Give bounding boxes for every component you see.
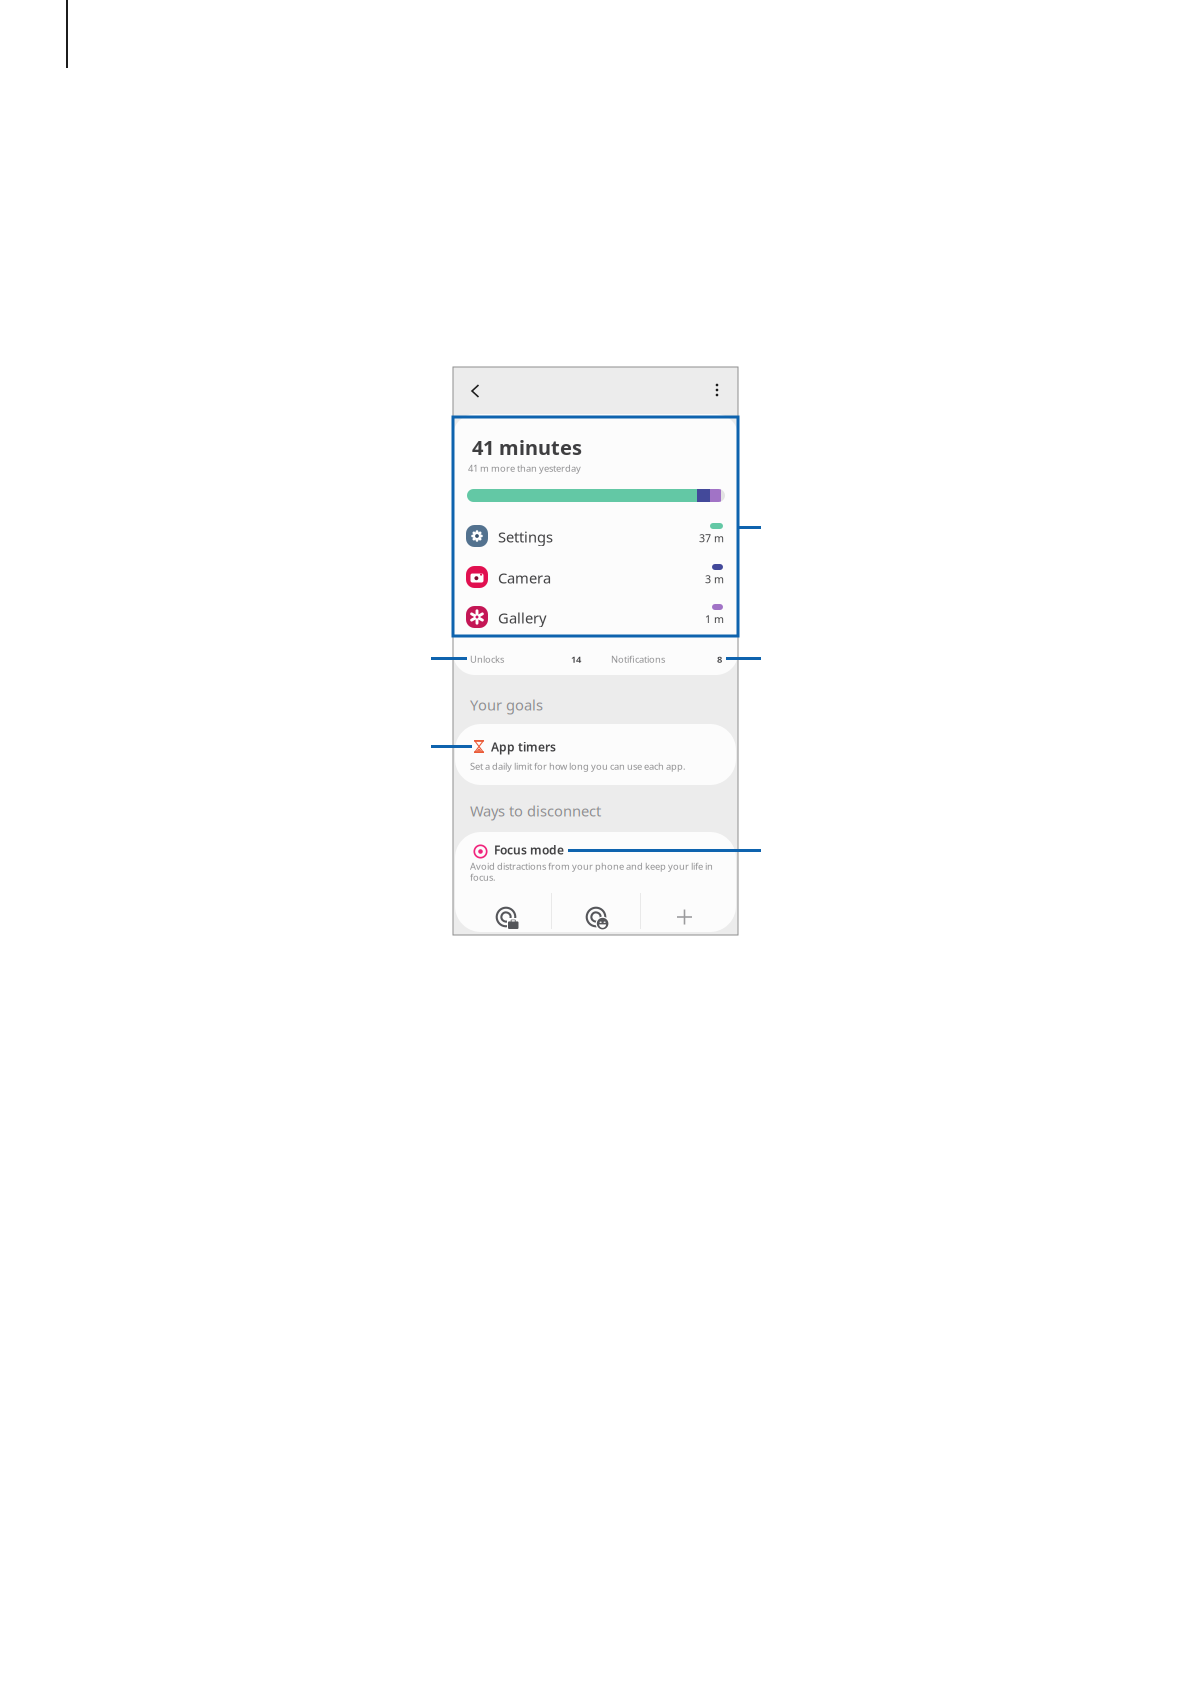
button[interactable]: Focus mode [455, 832, 736, 888]
staticText: 41 m more than yesterday [468, 462, 581, 474]
staticText: Ways to disconnect [470, 801, 601, 820]
staticText: 8 [717, 653, 722, 665]
staticText: Gallery [498, 608, 546, 627]
staticText: Avoid distractions from your phone and k… [470, 860, 713, 872]
staticText: Focus mode [494, 842, 564, 858]
button[interactable]: Back [459, 375, 491, 407]
button[interactable]: App timers [455, 724, 736, 785]
staticText: 1 m [705, 612, 724, 626]
button[interactable]: Settings [453, 519, 738, 553]
button[interactable]: Camera [453, 560, 738, 594]
button[interactable]: Gallery [453, 600, 738, 634]
staticText: App timers [491, 739, 556, 755]
button[interactable]: Work time focus mode [495, 906, 519, 930]
staticText: Your goals [470, 695, 543, 714]
staticText: 14 [571, 653, 581, 665]
button[interactable]: More options [701, 374, 733, 406]
staticText: Set a daily limit for how long you can u… [470, 760, 686, 772]
staticText: 41 minutes [472, 434, 582, 461]
staticText: 3 m [705, 572, 724, 586]
staticText: Notifications [611, 653, 665, 665]
staticText: Settings [498, 527, 553, 546]
staticText: 37 m [699, 531, 724, 545]
staticText: Camera [498, 568, 551, 587]
staticText: Unlocks [470, 653, 504, 665]
button[interactable]: Add focus mode [673, 905, 697, 929]
staticText: focus. [470, 871, 496, 883]
button[interactable]: Me time focus mode [585, 906, 609, 930]
